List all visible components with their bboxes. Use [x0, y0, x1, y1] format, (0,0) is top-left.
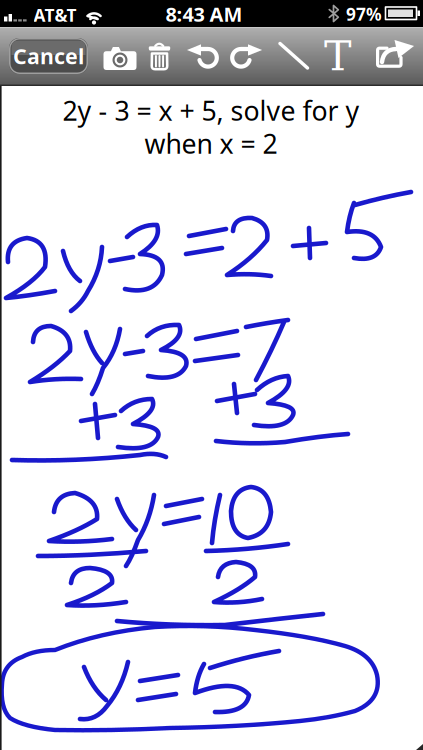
- staticText: 8:43 AM: [165, 1, 242, 27]
- staticText: Cancel: [13, 42, 84, 70]
- staticText: when x = 2: [144, 126, 277, 161]
- button[interactable]: Cancel: [9, 38, 88, 74]
- button[interactable]: Redo: [232, 44, 262, 69]
- staticText: 2y - 3 = x + 5, solve for y: [62, 93, 359, 128]
- staticText: T: [324, 32, 352, 80]
- button[interactable]: Delete: [149, 43, 170, 70]
- staticText: AT&T: [33, 3, 76, 26]
- staticText: 97%: [346, 2, 382, 25]
- button[interactable]: Line tool: [278, 42, 309, 70]
- button[interactable]: Share: [374, 39, 414, 68]
- button[interactable]: Text tool: [326, 42, 350, 70]
- button[interactable]: Camera: [103, 47, 136, 70]
- button[interactable]: Undo: [187, 44, 217, 69]
